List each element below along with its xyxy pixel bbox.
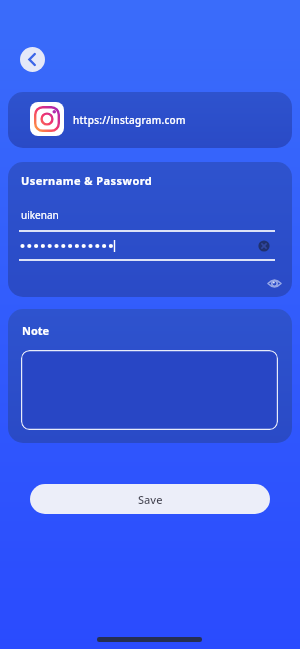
button[interactable]: [21, 350, 278, 430]
staticText: Username & Password: [21, 173, 153, 188]
staticText: Save: [138, 492, 163, 507]
button[interactable]: Save: [30, 484, 270, 514]
button[interactable]: [267, 278, 282, 289]
button[interactable]: [258, 240, 270, 252]
staticText: uikenan: [21, 208, 59, 222]
button[interactable]: [20, 47, 45, 72]
staticText: https://instagram.com: [73, 113, 186, 127]
staticText: Note: [22, 323, 50, 338]
button[interactable]: https://instagram.com: [8, 92, 292, 148]
